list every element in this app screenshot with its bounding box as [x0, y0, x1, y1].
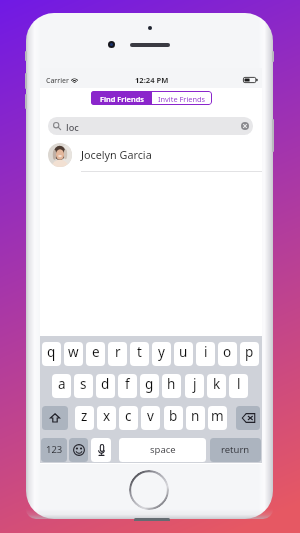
- button[interactable]: return: [210, 438, 261, 462]
- staticText: Joc: [66, 121, 79, 131]
- staticText: n: [191, 407, 200, 425]
- staticText: m: [211, 407, 224, 425]
- staticText: o: [223, 343, 232, 361]
- button[interactable]: l: [229, 374, 248, 398]
- staticText: f: [125, 375, 130, 393]
- button[interactable]: s: [74, 374, 93, 398]
- staticText: c: [125, 407, 132, 425]
- button[interactable]: Invite Friends: [152, 91, 212, 105]
- staticText: r: [115, 343, 121, 361]
- button[interactable]: Find Friends: [91, 91, 152, 105]
- staticText: s: [80, 375, 87, 393]
- button[interactable]: a: [52, 374, 71, 398]
- button[interactable]: Jocelyn Garcia: [40, 138, 262, 171]
- staticText: e: [92, 343, 100, 361]
- button[interactable]: j: [185, 374, 204, 398]
- button[interactable]: Emoji: [69, 438, 88, 462]
- button[interactable]: g: [140, 374, 159, 398]
- staticText: Jocelyn Garcia: [81, 147, 152, 162]
- staticText: v: [147, 407, 154, 425]
- staticText: q: [47, 343, 56, 361]
- staticText: x: [103, 407, 111, 425]
- button[interactable]: n: [186, 406, 205, 430]
- staticText: p: [245, 343, 254, 361]
- button[interactable]: i: [196, 342, 215, 366]
- staticText: g: [145, 375, 154, 393]
- button[interactable]: Shift: [42, 406, 68, 430]
- button[interactable]: r: [108, 342, 127, 366]
- button[interactable]: Numbers: [41, 438, 67, 462]
- staticText: return: [221, 443, 250, 456]
- staticText: 123: [46, 443, 63, 456]
- button[interactable]: p: [240, 342, 259, 366]
- staticText: j: [193, 375, 197, 393]
- staticText: d: [101, 375, 110, 393]
- button[interactable]: Dictate: [91, 438, 111, 462]
- staticText: a: [58, 375, 66, 393]
- button[interactable]: f: [118, 374, 137, 398]
- staticText: z: [81, 407, 88, 425]
- staticText: y: [158, 343, 165, 361]
- button[interactable]: u: [174, 342, 193, 366]
- button[interactable]: v: [141, 406, 160, 430]
- button[interactable]: Joc: [48, 117, 253, 135]
- staticText: l: [237, 375, 241, 393]
- button[interactable]: w: [64, 342, 83, 366]
- button[interactable]: t: [130, 342, 149, 366]
- staticText: i: [204, 343, 208, 361]
- button[interactable]: d: [96, 374, 115, 398]
- staticText: t: [137, 343, 142, 361]
- button[interactable]: space: [119, 438, 206, 462]
- button[interactable]: y: [152, 342, 171, 366]
- staticText: Carrier: [46, 76, 69, 85]
- button[interactable]: k: [207, 374, 226, 398]
- button[interactable]: q: [42, 342, 61, 366]
- staticText: space: [150, 443, 176, 456]
- staticText: h: [167, 375, 176, 393]
- button[interactable]: Backspace: [236, 406, 260, 430]
- button[interactable]: h: [162, 374, 181, 398]
- staticText: k: [213, 375, 221, 393]
- staticText: Invite Friends: [158, 94, 206, 104]
- button[interactable]: x: [97, 406, 116, 430]
- button[interactable]: e: [86, 342, 105, 366]
- button[interactable]: z: [75, 406, 94, 430]
- button[interactable]: Home: [129, 470, 169, 510]
- button[interactable]: o: [218, 342, 237, 366]
- staticText: w: [68, 343, 79, 361]
- staticText: 12:24 PM: [135, 75, 169, 84]
- button[interactable]: m: [208, 406, 227, 430]
- button[interactable]: b: [164, 406, 183, 430]
- staticText: u: [179, 343, 188, 361]
- staticText: b: [169, 407, 178, 425]
- staticText: Find Friends: [100, 94, 144, 104]
- button[interactable]: c: [119, 406, 138, 430]
